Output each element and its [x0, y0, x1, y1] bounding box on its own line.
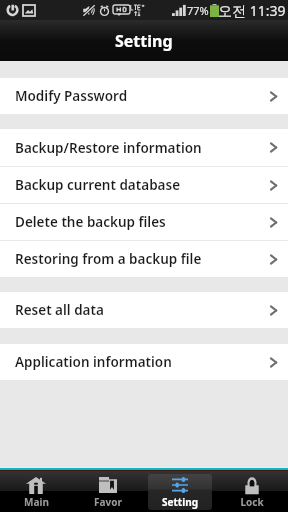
staticText: Setting — [162, 495, 198, 509]
staticText: Favor — [94, 495, 122, 509]
button[interactable]: Favor — [76, 474, 140, 510]
button[interactable]: Main — [4, 474, 68, 510]
other: Main — [26, 477, 46, 494]
staticText: Application information — [15, 353, 172, 371]
button[interactable]: Reset all data — [0, 292, 288, 328]
button[interactable]: Backup current database — [0, 167, 288, 203]
staticText: Delete the backup files — [15, 213, 166, 231]
button[interactable]: Modify Password — [0, 78, 288, 114]
staticText: Setting — [115, 30, 173, 52]
button[interactable]: Application information — [0, 344, 288, 380]
button[interactable]: Lock — [220, 474, 284, 510]
staticText: Lock — [240, 495, 264, 509]
staticText: 77% — [187, 3, 209, 18]
staticText: Backup current database — [15, 176, 181, 194]
button[interactable]: Backup/Restore information — [0, 129, 288, 166]
other: Setting — [172, 477, 188, 493]
staticText: Reset all data — [15, 301, 104, 319]
other: Lock — [244, 477, 260, 495]
button[interactable]: Delete the backup files — [0, 204, 288, 240]
staticText: Restoring from a backup file — [15, 250, 202, 268]
button[interactable]: Restoring from a backup file — [0, 241, 288, 277]
other: Favor — [99, 477, 117, 493]
staticText: Modify Password — [15, 87, 128, 105]
staticText: Backup/Restore information — [15, 139, 202, 157]
staticText: 오전 11:39 — [218, 1, 286, 20]
staticText: Main — [24, 495, 49, 509]
button[interactable]: Setting — [148, 474, 212, 510]
